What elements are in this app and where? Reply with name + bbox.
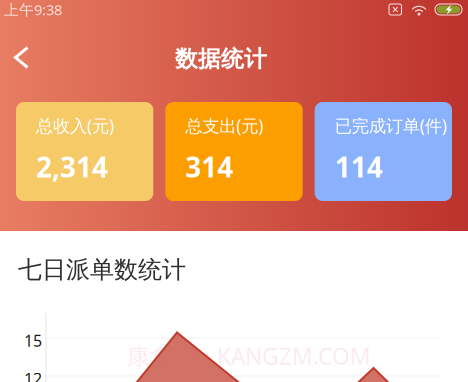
staticText: 12 xyxy=(24,368,42,382)
staticText: 数据统计 xyxy=(175,45,267,73)
button[interactable]: 返回 xyxy=(0,34,47,81)
staticText: 15 xyxy=(24,330,42,351)
staticText: 七日派单数统计 xyxy=(18,255,186,284)
staticText: 314 xyxy=(185,148,233,185)
staticText: 114 xyxy=(335,148,383,185)
staticText: 已完成订单(件) xyxy=(335,114,447,137)
staticText: 总支出(元) xyxy=(185,114,263,137)
staticText: 康拿门 • KANGZM.COM xyxy=(127,341,371,371)
staticText: 2,314 xyxy=(36,148,108,185)
staticText: 总收入(元) xyxy=(36,114,114,137)
staticText: 上午9:38 xyxy=(4,0,62,19)
